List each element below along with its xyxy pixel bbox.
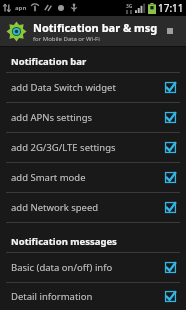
other: Enabled	[164, 171, 177, 184]
staticText: for Mobile Data or Wi-Fi	[33, 35, 100, 43]
button[interactable]: App icon, navigate up	[3, 18, 29, 44]
staticText: apn	[15, 4, 27, 12]
staticText: add 2G/3G/LTE settings	[11, 141, 164, 154]
button[interactable]: add Smart mode	[0, 163, 186, 192]
button[interactable]: add APNs settings	[0, 103, 186, 132]
button[interactable]: add Network speed	[0, 193, 186, 222]
other: Enabled	[164, 261, 177, 274]
button[interactable]: More options	[158, 19, 182, 43]
other: Enabled	[164, 201, 177, 214]
staticText: Notification messages	[11, 235, 117, 248]
staticText: add APNs settings	[11, 111, 164, 124]
other: Enabled	[164, 290, 177, 303]
button[interactable]: add Data Switch widget	[0, 73, 186, 102]
staticText: Notification bar & msg	[33, 20, 158, 35]
staticText: add Network speed	[11, 201, 164, 214]
staticText: Notification bar	[11, 55, 87, 68]
button[interactable]: add 2G/3G/LTE settings	[0, 133, 186, 162]
other: Enabled	[164, 141, 177, 154]
staticText: Basic (data on/off) info	[11, 261, 164, 274]
other: Enabled	[164, 81, 177, 94]
staticText: add Data Switch widget	[11, 81, 164, 94]
button[interactable]: Detail information	[0, 283, 186, 310]
staticText: 3G	[126, 3, 133, 10]
staticText: add Smart mode	[11, 171, 164, 184]
other: Enabled	[164, 111, 177, 124]
staticText: 17:11	[158, 1, 184, 15]
staticText: Detail information	[11, 290, 164, 303]
button[interactable]: Basic (data on/off) info	[0, 253, 186, 282]
